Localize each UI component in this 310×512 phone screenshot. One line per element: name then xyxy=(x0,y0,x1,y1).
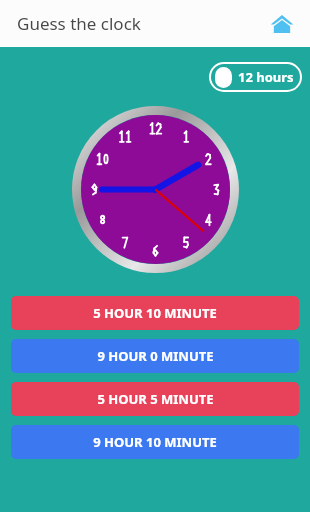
staticText: 5 HOUR 5 MINUTE xyxy=(97,390,214,408)
button[interactable]: 9 HOUR 0 MINUTE xyxy=(11,339,299,373)
button[interactable]: Home xyxy=(266,8,298,40)
button[interactable]: 5 HOUR 5 MINUTE xyxy=(11,382,299,416)
button[interactable]: 5 HOUR 10 MINUTE xyxy=(11,296,299,330)
staticText: 9 HOUR 0 MINUTE xyxy=(97,347,214,365)
staticText: 12 hours xyxy=(238,68,294,86)
staticText: 5 HOUR 10 MINUTE xyxy=(93,304,217,322)
button[interactable]: 9 HOUR 10 MINUTE xyxy=(11,425,299,459)
staticText: 9 HOUR 10 MINUTE xyxy=(93,433,217,451)
button[interactable]: 12 hours xyxy=(211,64,300,90)
staticText: Guess the clock xyxy=(17,12,141,35)
